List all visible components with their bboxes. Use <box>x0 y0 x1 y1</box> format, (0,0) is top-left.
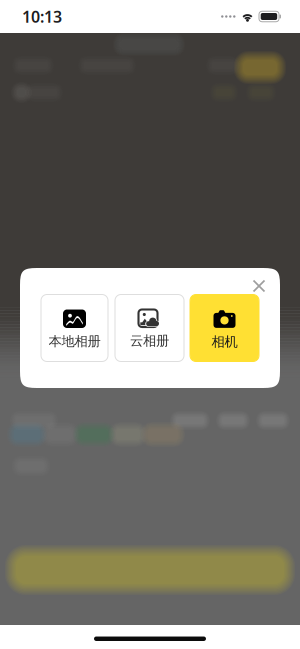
staticText: 10:13 <box>22 6 62 27</box>
button[interactable]: 云相册 <box>115 294 184 361</box>
staticText: 本地相册 <box>48 333 100 349</box>
button[interactable]: 本地相册 <box>41 294 108 361</box>
staticText: 相机 <box>211 333 237 350</box>
staticText: 云相册 <box>130 332 169 349</box>
button[interactable]: 关闭 <box>246 273 272 299</box>
button[interactable]: 相机 <box>190 294 259 361</box>
